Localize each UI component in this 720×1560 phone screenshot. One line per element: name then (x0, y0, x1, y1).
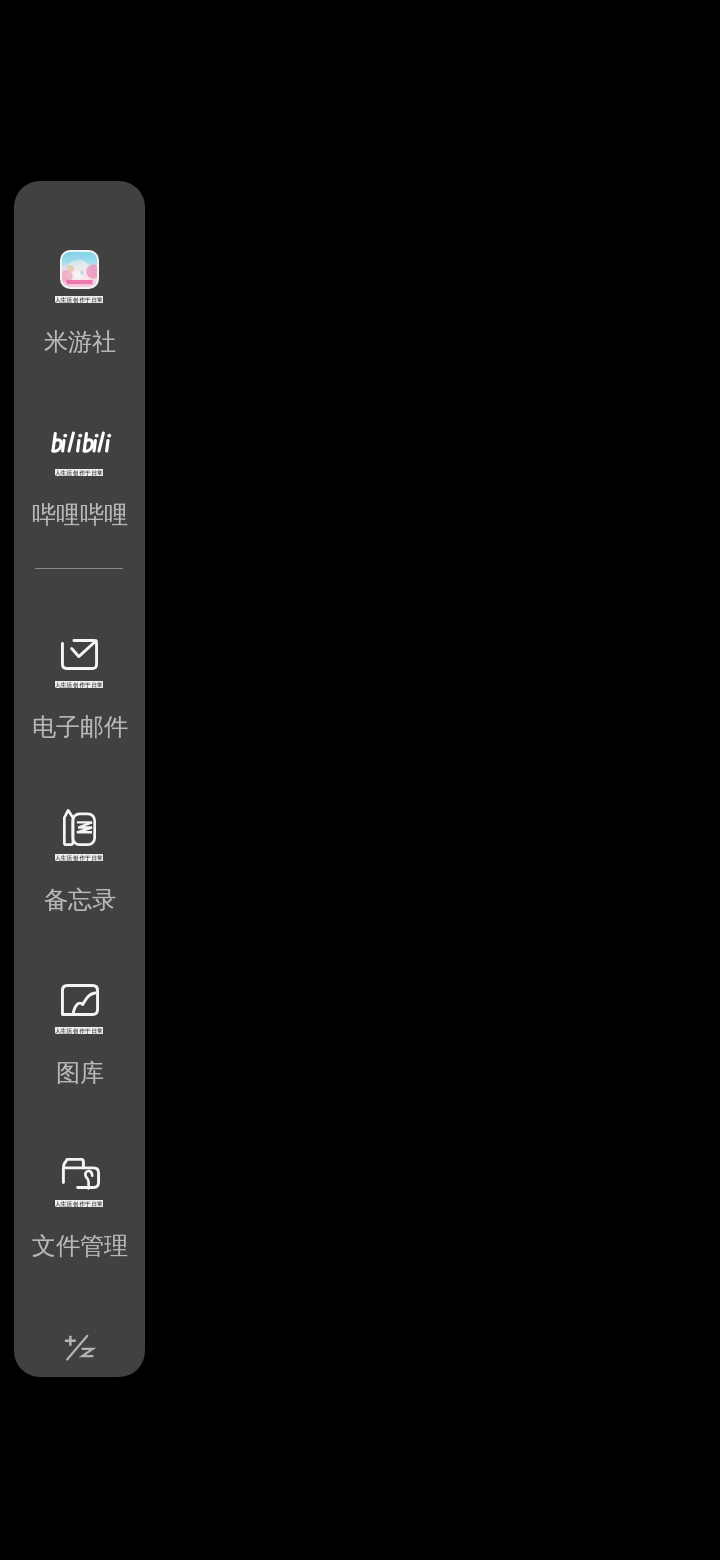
button[interactable]: Bilibili (14, 392, 145, 517)
button[interactable]: Notes (14, 777, 145, 902)
button[interactable]: Gallery (14, 950, 145, 1075)
staticText: 人生活 创 作于 日常 (55, 854, 103, 861)
button[interactable]: Add shortcut (49, 1316, 109, 1376)
staticText: 哔哩哔哩 (32, 500, 128, 530)
staticText: 图库 (56, 1058, 104, 1088)
staticText: 人生活 创 作于 日常 (55, 1027, 103, 1034)
button[interactable]: Email (14, 604, 145, 729)
staticText: 人生活 创 作于 日常 (55, 1200, 103, 1207)
staticText: 文件管理 (32, 1231, 128, 1261)
staticText: 米游社 (44, 327, 116, 357)
staticText: 人生活 创 作于 日常 (55, 469, 103, 476)
staticText: 电子邮件 (32, 712, 128, 742)
staticText: 备忘录 (44, 885, 116, 915)
button[interactable]: File manager (14, 1123, 145, 1248)
staticText: 人生活 创 作于 日常 (55, 681, 103, 688)
button[interactable]: Miyoushe (14, 219, 145, 344)
staticText: 人生活 创 作于 日常 (55, 296, 103, 303)
